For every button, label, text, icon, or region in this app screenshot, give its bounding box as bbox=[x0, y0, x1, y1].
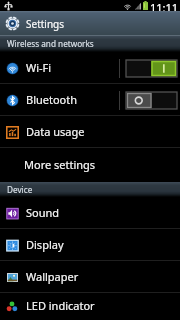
staticText: Wallpaper bbox=[26, 269, 79, 284]
button[interactable]: More settings bbox=[0, 148, 180, 182]
button[interactable]: Turn off bbox=[126, 60, 177, 77]
staticText: More settings bbox=[24, 157, 96, 172]
button[interactable]: Wallpaper bbox=[0, 261, 180, 293]
staticText: Bluetooth bbox=[26, 92, 78, 107]
button[interactable]: Display bbox=[0, 229, 180, 261]
staticText: Sound bbox=[26, 205, 60, 220]
staticText: Wireless and networks bbox=[7, 38, 94, 49]
button[interactable]: LED indicator bbox=[0, 293, 180, 320]
staticText: LED indicator bbox=[26, 298, 95, 313]
staticText: Wi-Fi bbox=[26, 60, 52, 75]
button[interactable]: Bluetooth bbox=[0, 84, 180, 116]
staticText: Device bbox=[7, 184, 33, 195]
button[interactable]: Sound bbox=[0, 197, 180, 229]
staticText: Display bbox=[26, 237, 64, 252]
staticText: Settings bbox=[26, 17, 65, 31]
staticText: 11:11 bbox=[150, 0, 179, 11]
button[interactable]: Data usage bbox=[0, 116, 180, 148]
button[interactable]: Wi-Fi bbox=[0, 52, 180, 84]
staticText: Data usage bbox=[26, 124, 85, 139]
button[interactable]: Turn on bbox=[126, 92, 177, 109]
